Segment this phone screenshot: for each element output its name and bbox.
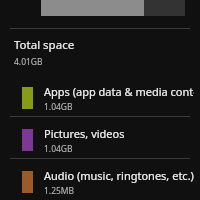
staticText: Pictures, videos [44,126,125,141]
button[interactable]: Total space [0,29,200,74]
staticText: 4.01GB [14,56,43,68]
button[interactable]: Audio (music, ringtones, etc.) [0,164,200,200]
button[interactable]: Apps (app data & media content) [0,80,200,116]
staticText: Total space [14,37,75,53]
staticText: 1.25MB [44,185,75,197]
staticText: 1.04GB [44,101,73,113]
staticText: Apps (app data & media content) [44,84,194,99]
staticText: 1.04GB [44,143,73,155]
staticText: Audio (music, ringtones, etc.) [44,168,194,183]
button[interactable]: Pictures, videos [0,122,200,158]
